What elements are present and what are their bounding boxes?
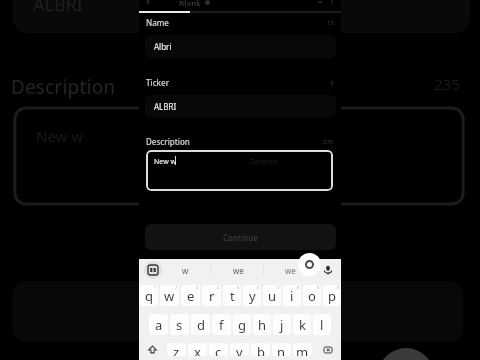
button[interactable]: 9	[303, 285, 321, 306]
button[interactable]: x	[188, 343, 207, 356]
staticText: s	[176, 316, 183, 334]
staticText: 0	[337, 285, 340, 290]
button[interactable]: g	[233, 314, 251, 335]
staticText: y	[249, 287, 256, 305]
button[interactable]: ALBRI	[145, 95, 336, 118]
button[interactable]: v	[230, 343, 249, 356]
staticText: 5	[237, 285, 240, 290]
staticText: m	[296, 343, 309, 356]
button[interactable]: New w	[146, 150, 333, 191]
staticText: i	[290, 287, 294, 305]
staticText: e	[187, 287, 195, 305]
button[interactable]: n	[272, 343, 291, 356]
staticText: Ticker	[146, 77, 170, 88]
button[interactable]: Shift	[139, 343, 165, 356]
staticText: ALBRI	[33, 0, 83, 17]
staticText: Name	[146, 17, 169, 28]
staticText: New w	[36, 126, 84, 146]
staticText: 4	[217, 285, 220, 290]
button[interactable]: l	[313, 314, 331, 335]
staticText: c	[215, 343, 222, 356]
button[interactable]: 1	[139, 285, 158, 306]
button[interactable]: 0	[323, 285, 341, 306]
button[interactable]: we	[218, 259, 258, 281]
button[interactable]: j	[273, 314, 291, 335]
button[interactable]: Stickers	[144, 261, 162, 279]
staticText: 1	[154, 285, 157, 290]
button[interactable]: a	[149, 314, 168, 335]
button[interactable]: f	[212, 314, 231, 335]
staticText: 15	[327, 19, 334, 27]
staticText: r	[209, 287, 215, 305]
button[interactable]: Continue	[145, 224, 336, 250]
button[interactable]: d	[191, 314, 210, 335]
staticText: k	[299, 316, 306, 334]
button[interactable]: c	[209, 343, 228, 356]
staticText: h	[258, 316, 267, 334]
button[interactable]: z	[167, 343, 186, 356]
staticText: 235	[323, 138, 334, 146]
staticText: w	[182, 265, 189, 276]
staticText: Description	[11, 74, 116, 100]
staticText: 6	[257, 285, 260, 290]
button[interactable]: s	[170, 314, 189, 335]
staticText: w	[164, 287, 175, 305]
button[interactable]: h	[253, 314, 271, 335]
button[interactable]: Voice input	[322, 264, 334, 276]
button[interactable]: Expand	[316, 0, 324, 6]
button[interactable]: 2	[160, 285, 179, 306]
button[interactable]: Albri	[145, 35, 336, 58]
button[interactable]: k	[293, 314, 311, 335]
staticText: 8	[297, 285, 300, 290]
staticText: we	[285, 265, 296, 276]
staticText: 235	[434, 74, 460, 94]
staticText: 9	[317, 285, 320, 290]
staticText: d	[197, 316, 205, 334]
button[interactable]: b	[251, 343, 270, 356]
button[interactable]: 3	[181, 285, 200, 306]
staticText: v	[236, 343, 243, 356]
button[interactable]: w	[165, 259, 205, 281]
staticText: 7	[277, 285, 280, 290]
button[interactable]: 6	[243, 285, 261, 306]
button[interactable]: Back	[144, 0, 152, 6]
staticText: n	[277, 343, 286, 356]
button[interactable]: 8	[283, 285, 301, 306]
staticText: ALBRI	[154, 101, 177, 112]
staticText: we	[233, 265, 244, 276]
staticText: p	[328, 287, 336, 305]
button[interactable]: More options	[328, 0, 336, 6]
staticText: u	[268, 287, 277, 305]
staticText: Describe	[250, 157, 279, 167]
staticText: f	[219, 316, 224, 334]
staticText: l	[320, 316, 324, 334]
staticText: q	[145, 287, 153, 305]
staticText: t	[230, 287, 235, 305]
staticText: g	[238, 316, 246, 334]
button[interactable]: 4	[202, 285, 221, 306]
staticText: Albri	[154, 41, 172, 52]
staticText: a	[155, 316, 163, 334]
staticText: b	[257, 343, 265, 356]
staticText: New w	[154, 157, 176, 167]
staticText: Description	[146, 136, 190, 147]
staticText: Blank	[179, 0, 202, 6]
button[interactable]: 5	[223, 285, 241, 306]
button[interactable]: we	[270, 259, 310, 281]
staticText: Continue	[223, 232, 258, 243]
staticText: 2	[175, 285, 178, 290]
button[interactable]: 7	[263, 285, 281, 306]
button[interactable]: m	[293, 343, 312, 356]
staticText: x	[194, 343, 201, 356]
staticText: 5	[330, 79, 334, 87]
staticText: j	[280, 316, 284, 334]
staticText: o	[308, 287, 316, 305]
button[interactable]: Google search	[298, 253, 321, 276]
staticText: z	[173, 343, 180, 356]
staticText: 3	[196, 285, 199, 290]
button[interactable]: Backspace	[314, 343, 341, 356]
